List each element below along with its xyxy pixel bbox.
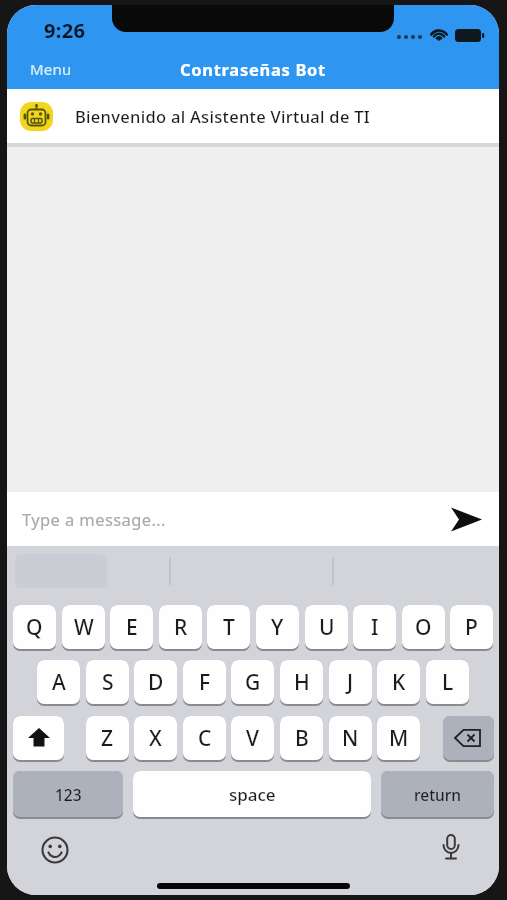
button[interactable]: 123 [13,771,123,819]
button[interactable]: B [280,716,323,762]
staticText: X [149,724,162,753]
button[interactable]: J [329,660,372,706]
button[interactable] [451,507,482,532]
button[interactable]: P [450,605,493,651]
button[interactable]: Menu [23,53,93,85]
staticText: P [465,613,478,642]
button[interactable]: N [329,716,372,762]
button[interactable]: Z [86,716,129,762]
button[interactable]: Y [256,605,299,651]
staticText: 9:26 [44,17,86,44]
staticText: O [415,613,432,642]
button[interactable]: space [133,771,371,819]
staticText: Y [271,613,284,642]
button[interactable]: D [134,660,177,706]
staticText: space [229,783,276,806]
staticText: K [392,668,406,697]
staticText: M [389,724,409,753]
button[interactable]: E [110,605,153,651]
staticText: S [102,668,114,697]
button[interactable]: O [402,605,445,651]
staticText: T [223,613,235,642]
button[interactable]: M [377,716,420,762]
staticText: C [198,724,212,753]
button[interactable]: Bienvenido al Asistente Virtual de TI [7,89,499,143]
button[interactable] [13,716,64,762]
button[interactable]: X [134,716,177,762]
button[interactable]: F [183,660,226,706]
staticText: H [294,668,310,697]
button[interactable]: L [426,660,469,706]
staticText: G [245,668,261,697]
button[interactable]: W [62,605,105,651]
staticText: J [347,668,354,697]
button[interactable]: I [353,605,396,651]
staticText: W [74,613,94,642]
staticText: V [246,724,259,753]
staticText: D [148,668,164,697]
staticText: N [342,724,359,753]
button[interactable]: Type a message... [7,492,499,546]
button[interactable]: R [159,605,202,651]
button[interactable]: C [183,716,226,762]
button[interactable]: U [305,605,348,651]
staticText: Q [26,613,43,642]
staticText: Type a message... [22,508,166,530]
button[interactable]: Q [13,605,56,651]
staticText: Contraseñas Bot [180,58,326,80]
staticText: return [414,784,462,805]
staticText: Menu [30,59,72,79]
button[interactable] [41,836,69,864]
staticText: E [126,613,138,642]
button[interactable]: A [37,660,80,706]
staticText: F [199,668,211,697]
staticText: Z [101,724,114,753]
staticText: A [52,668,66,697]
button[interactable]: T [207,605,250,651]
button[interactable]: K [377,660,420,706]
staticText: L [442,668,454,697]
button[interactable] [443,716,494,762]
staticText: I [371,613,379,642]
button[interactable]: return [381,771,494,819]
staticText: U [319,613,335,642]
staticText: Bienvenido al Asistente Virtual de TI [75,105,370,127]
staticText: R [174,613,188,642]
button[interactable]: G [231,660,274,706]
staticText: 123 [55,784,82,805]
button[interactable] [439,834,463,866]
button[interactable]: S [86,660,129,706]
button[interactable]: H [280,660,323,706]
button[interactable]: V [231,716,274,762]
staticText: B [295,724,309,753]
